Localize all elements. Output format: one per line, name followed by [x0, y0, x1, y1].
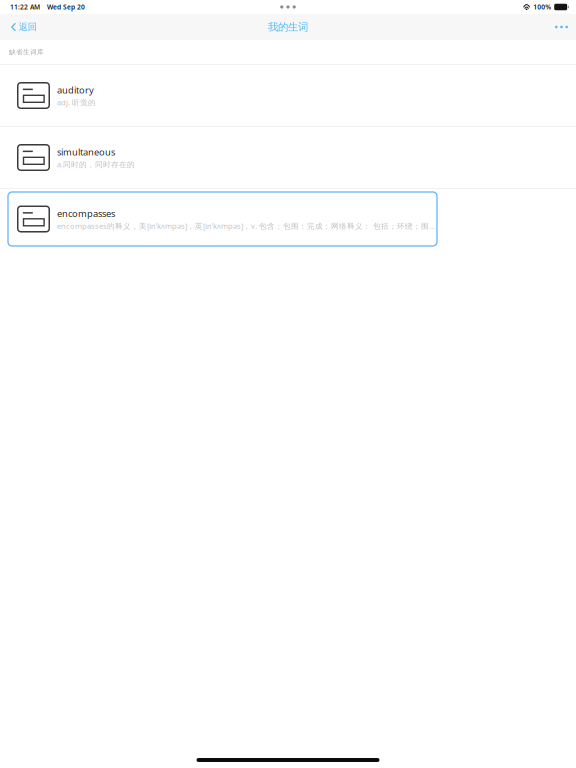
- staticText: auditory: [57, 83, 94, 96]
- button[interactable]: encompasses: [0, 189, 576, 246]
- staticText: simultaneous: [57, 145, 115, 158]
- button[interactable]: auditory: [0, 65, 576, 126]
- staticText: a.同时的，同时存在的: [57, 159, 135, 170]
- staticText: 缺省生词库: [9, 48, 44, 56]
- staticText: 我的生词: [268, 20, 308, 33]
- staticText: 返回: [19, 21, 37, 33]
- button[interactable]: 返回: [0, 16, 43, 38]
- staticText: 11:22 AM: [10, 3, 40, 11]
- staticText: encompasses的释义，美[ɪnˈkʌmpəs]，英[ɪnˈkʌmpəs]…: [57, 221, 437, 231]
- staticText: Wed Sep 20: [47, 3, 85, 11]
- button[interactable]: More options: [545, 18, 576, 36]
- staticText: adj. 听觉的: [57, 97, 96, 108]
- staticText: 100%: [533, 3, 551, 11]
- staticText: encompasses: [57, 207, 115, 220]
- button[interactable]: simultaneous: [0, 127, 576, 188]
